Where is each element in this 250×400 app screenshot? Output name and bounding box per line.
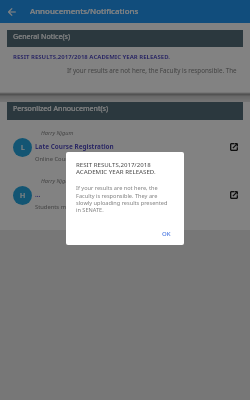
button[interactable]: Harry Njgum bbox=[0, 127, 250, 173]
button[interactable]: Open announcement bbox=[226, 187, 241, 202]
staticText: H bbox=[20, 191, 26, 201]
button[interactable]: Back bbox=[0, 0, 23, 23]
staticText: If your results are not here, the Facult… bbox=[76, 184, 169, 213]
staticText: Online Course registration ends who dit … bbox=[35, 155, 156, 163]
staticText: RESIT RESULTS,2017/2018 ACADEMIC YEAR RE… bbox=[8, 53, 175, 61]
staticText: Late Course Registration bbox=[35, 142, 114, 151]
staticText: Annoucements/Notifications bbox=[30, 6, 139, 17]
button[interactable]: OK bbox=[158, 228, 175, 240]
staticText: OK bbox=[162, 230, 171, 238]
staticText: L bbox=[21, 143, 25, 153]
staticText: If your results are not here, the Facult… bbox=[67, 66, 237, 75]
staticText: Harry Njgum bbox=[41, 129, 74, 137]
button[interactable]: General Notice(s) bbox=[7, 30, 243, 47]
button[interactable]: Open announcement bbox=[226, 139, 241, 154]
staticText: Students must be in school before the ex… bbox=[35, 203, 163, 211]
button[interactable]: Personlized Annoucement(s) bbox=[7, 102, 243, 120]
staticText: ... bbox=[35, 190, 41, 199]
staticText: General Notice(s) bbox=[13, 31, 71, 41]
staticText: Harry Njgum bbox=[41, 177, 74, 185]
staticText: RESIT RESULTS,2017/2018 ACADEMIC YEAR RE… bbox=[76, 160, 174, 175]
staticText: Personlized Annoucement(s) bbox=[13, 103, 109, 113]
button[interactable]: Harry Njgum bbox=[0, 175, 250, 221]
